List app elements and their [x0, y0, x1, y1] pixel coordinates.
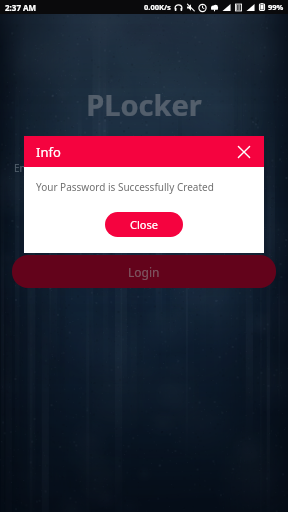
staticText: 0.00K/s — [144, 2, 171, 12]
staticText: Close — [130, 217, 158, 232]
button[interactable]: Close dialog — [233, 141, 255, 163]
button[interactable]: Close — [105, 212, 183, 237]
staticText: 99% — [268, 2, 284, 12]
staticText: 2:37 AM — [5, 2, 37, 13]
staticText: PLocker — [0, 85, 288, 124]
staticText: Enter Password — [14, 161, 87, 175]
staticText: Login — [128, 264, 160, 280]
button[interactable]: Login — [12, 255, 276, 288]
staticText: Info — [36, 143, 61, 161]
staticText: Your Password is Successfully Created — [36, 180, 214, 194]
